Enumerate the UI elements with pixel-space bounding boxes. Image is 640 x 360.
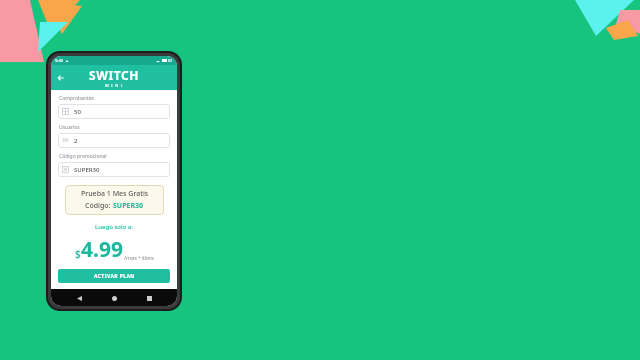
staticText: /mes [124, 254, 137, 261]
staticText: Código: [85, 201, 113, 211]
staticText: 2 [74, 137, 78, 145]
staticText: 9:43 [55, 58, 63, 63]
staticText: M I N I [105, 83, 124, 88]
button[interactable]: ACTIVAR PLAN [58, 269, 170, 283]
staticText: + itbms [137, 255, 154, 261]
button[interactable]: Prueba 1 Mes Gratis [65, 185, 164, 215]
staticText: SWITCH [89, 67, 140, 83]
staticText: $ [75, 247, 81, 261]
staticText: SUPER30 [113, 201, 144, 211]
staticText: Prueba 1 Mes Gratis [81, 189, 149, 199]
staticText: 4.99 [81, 235, 123, 264]
staticText: 83 [168, 58, 173, 63]
staticText: Luego solo a: [58, 223, 170, 231]
button[interactable]: 2 [58, 133, 170, 148]
button[interactable]: Back [54, 71, 68, 85]
button[interactable]: Back [72, 291, 86, 305]
staticText: SUPER30 [74, 166, 100, 174]
staticText: Código promocional [59, 153, 107, 160]
staticText: Usuarios [59, 124, 80, 131]
button[interactable]: Recents [142, 291, 156, 305]
staticText: 50 [74, 108, 81, 116]
staticText: ACTIVAR PLAN [94, 273, 135, 280]
button[interactable]: SUPER30 [58, 162, 170, 177]
button[interactable]: 50 [58, 104, 170, 119]
staticText: Comprobantes [59, 95, 94, 102]
button[interactable]: Home [107, 291, 121, 305]
